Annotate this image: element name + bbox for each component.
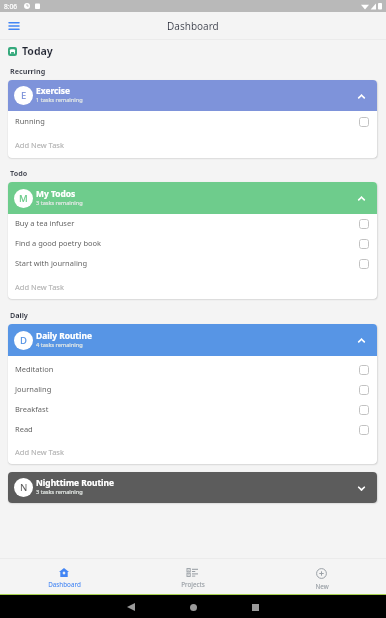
staticText: 3 tasks remaining [36, 488, 83, 496]
staticText: Dashboard [167, 19, 219, 33]
button[interactable]: New [257, 559, 386, 594]
staticText: Meditation [15, 364, 54, 374]
staticText: Dashboard [48, 580, 81, 589]
button[interactable]: Recent apps [224, 604, 286, 611]
button[interactable]: Add New Task [8, 132, 377, 158]
staticText: Read [15, 424, 33, 434]
button[interactable]: Start with journaling [8, 254, 377, 274]
button[interactable]: Buy a tea infuser [8, 214, 377, 234]
staticText: Running [15, 116, 45, 126]
other: Toggle task complete [359, 117, 369, 127]
button[interactable]: Running [8, 112, 377, 132]
staticText: Buy a tea infuser [15, 218, 75, 228]
other: Toggle task complete [359, 425, 369, 435]
staticText: Start with journaling [15, 258, 88, 268]
button[interactable]: Add New Task [8, 274, 377, 299]
staticText: Add New Task [15, 140, 64, 150]
other: Toggle task complete [359, 365, 369, 375]
other: Toggle task complete [359, 385, 369, 395]
staticText: Exercise [36, 85, 71, 96]
other: Toggle task complete [359, 405, 369, 415]
staticText: 1 tasks remaining [36, 96, 83, 104]
button[interactable]: Projects [128, 559, 257, 594]
button[interactable]: Home [162, 604, 224, 611]
button[interactable]: Find a good poetry book [8, 234, 377, 254]
button[interactable]: Breakfast [8, 400, 377, 420]
button[interactable]: Back [100, 603, 162, 611]
button[interactable]: Meditation [8, 360, 377, 380]
staticText: Journaling [15, 384, 52, 394]
staticText: Daily [10, 310, 28, 320]
other: Toggle task complete [359, 259, 369, 269]
other: Collapse [355, 334, 367, 346]
staticText: Today [22, 44, 53, 58]
staticText: Projects [181, 580, 205, 589]
staticText: Breakfast [15, 404, 49, 414]
other: Toggle task complete [359, 239, 369, 249]
staticText: Add New Task [15, 282, 64, 292]
other: Toggle task complete [359, 219, 369, 229]
other: Expand [355, 482, 367, 494]
staticText: Recurring [10, 66, 46, 76]
staticText: Daily Routine [36, 330, 92, 341]
staticText: N [20, 481, 28, 494]
button[interactable]: N [8, 472, 377, 503]
staticText: E [21, 89, 27, 102]
staticText: 3 tasks remaining [36, 199, 83, 207]
staticText: M [19, 192, 28, 205]
staticText: New [315, 582, 329, 591]
button[interactable]: Dashboard [0, 559, 128, 594]
button[interactable]: Add New Task [8, 440, 377, 464]
staticText: Add New Task [15, 447, 64, 457]
button[interactable]: D [8, 324, 377, 356]
button[interactable]: Journaling [8, 380, 377, 400]
staticText: 8:06 [4, 2, 18, 11]
button[interactable]: E [8, 80, 377, 111]
other: Collapse [355, 90, 367, 102]
button[interactable]: Read [8, 420, 377, 440]
staticText: My Todos [36, 188, 76, 199]
staticText: Nighttime Routine [36, 477, 115, 488]
button[interactable]: M [8, 182, 377, 214]
button[interactable]: Open navigation menu [4, 16, 24, 36]
staticText: Find a good poetry book [15, 238, 102, 248]
staticText: 4 tasks remaining [36, 341, 83, 349]
other: Collapse [355, 192, 367, 204]
staticText: D [20, 334, 27, 347]
staticText: Todo [10, 168, 28, 178]
